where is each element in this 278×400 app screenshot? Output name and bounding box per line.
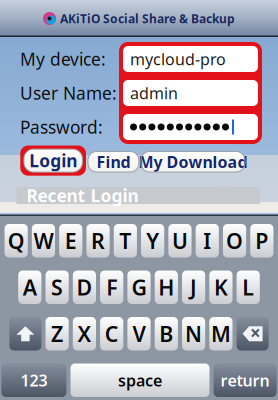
staticText: D bbox=[76, 273, 92, 301]
staticText: L bbox=[242, 273, 254, 301]
button[interactable]: V bbox=[127, 317, 151, 350]
button[interactable]: T bbox=[114, 224, 137, 257]
button[interactable]: X bbox=[73, 317, 96, 350]
button[interactable]: K bbox=[209, 270, 232, 304]
staticText: × bbox=[250, 320, 261, 345]
staticText: Recent Login bbox=[26, 184, 138, 207]
button[interactable]: L bbox=[237, 270, 260, 304]
staticText: A bbox=[23, 273, 37, 301]
button[interactable]: mycloud-pro bbox=[123, 46, 258, 72]
staticText: admin bbox=[130, 82, 178, 104]
staticText: P bbox=[255, 227, 268, 255]
button[interactable]: P bbox=[250, 224, 273, 257]
button[interactable]: return bbox=[214, 363, 277, 397]
button[interactable]: U bbox=[168, 224, 192, 257]
button[interactable]: R bbox=[86, 224, 110, 257]
button[interactable]: Q bbox=[5, 224, 28, 257]
staticText: Login bbox=[29, 149, 77, 172]
button[interactable]: I bbox=[196, 224, 219, 257]
button[interactable]: Shift bbox=[9, 317, 41, 350]
button[interactable]: E bbox=[59, 224, 82, 257]
button[interactable]: space bbox=[70, 363, 209, 397]
staticText: M bbox=[211, 320, 231, 348]
staticText: I bbox=[203, 227, 211, 255]
button[interactable]: C bbox=[100, 317, 123, 350]
button[interactable]: F bbox=[100, 270, 123, 304]
button[interactable]: Login bbox=[24, 149, 82, 172]
button[interactable]: G bbox=[127, 270, 151, 304]
button[interactable]: A bbox=[18, 270, 41, 304]
staticText: space bbox=[118, 370, 162, 391]
button[interactable]: Delete bbox=[237, 317, 269, 350]
button[interactable]: N bbox=[182, 317, 205, 350]
staticText: X bbox=[77, 320, 91, 348]
button[interactable] bbox=[123, 114, 258, 140]
staticText: Q bbox=[8, 227, 25, 255]
staticText: O bbox=[226, 227, 243, 255]
button[interactable]: Find bbox=[88, 151, 139, 172]
staticText: Z bbox=[51, 320, 63, 348]
button[interactable]: O bbox=[223, 224, 246, 257]
staticText: E bbox=[65, 227, 77, 255]
button[interactable]: admin bbox=[123, 80, 258, 106]
button[interactable]: J bbox=[182, 270, 205, 304]
staticText: return bbox=[221, 370, 270, 391]
staticText: B bbox=[159, 320, 173, 348]
staticText: N bbox=[185, 320, 202, 348]
button[interactable]: My Download bbox=[141, 151, 245, 172]
button[interactable]: W bbox=[32, 224, 55, 257]
staticText: mycloud-pro bbox=[130, 48, 226, 70]
staticText: Find bbox=[96, 151, 130, 172]
staticText: S bbox=[51, 273, 63, 301]
button[interactable]: M bbox=[209, 317, 232, 350]
button[interactable]: D bbox=[73, 270, 96, 304]
staticText: F bbox=[106, 273, 117, 301]
staticText: R bbox=[91, 227, 105, 255]
staticText: U bbox=[172, 227, 188, 255]
button[interactable]: H bbox=[155, 270, 178, 304]
staticText: G bbox=[131, 273, 146, 301]
staticText: 123 bbox=[20, 370, 47, 391]
button[interactable]: B bbox=[155, 317, 178, 350]
staticText: W bbox=[33, 227, 53, 255]
staticText: Password: bbox=[20, 115, 103, 138]
staticText: AKiTiO Social Share & Backup bbox=[60, 10, 235, 26]
button[interactable]: Z bbox=[45, 317, 69, 350]
staticText: K bbox=[214, 273, 228, 301]
staticText: V bbox=[132, 320, 145, 348]
staticText: H bbox=[158, 273, 174, 301]
button[interactable]: 123 bbox=[1, 363, 66, 397]
staticText: J bbox=[190, 273, 197, 301]
staticText: My Download bbox=[138, 151, 247, 172]
staticText: T bbox=[119, 227, 131, 255]
staticText: C bbox=[105, 320, 119, 348]
staticText: Y bbox=[146, 227, 159, 255]
button[interactable]: S bbox=[45, 270, 69, 304]
staticText: My device: bbox=[20, 47, 106, 70]
button[interactable]: Y bbox=[141, 224, 164, 257]
staticText: User Name: bbox=[20, 81, 117, 104]
